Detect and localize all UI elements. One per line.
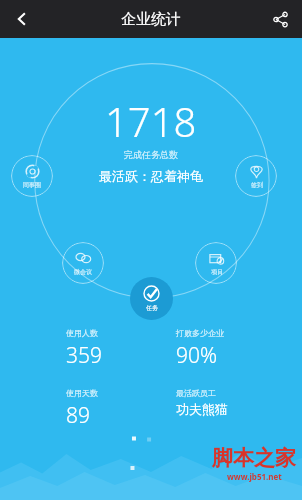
- staticText: 任务: [146, 304, 158, 312]
- button[interactable]: 签到: [235, 155, 277, 197]
- staticText: 359: [66, 341, 102, 370]
- button[interactable]: 任务: [130, 277, 173, 320]
- button[interactable]: 项目: [195, 242, 237, 284]
- staticText: 项目: [211, 268, 223, 276]
- staticText: 90%: [176, 341, 218, 370]
- staticText: 脚本之家: [212, 445, 296, 471]
- staticText: 企业统计: [121, 10, 181, 29]
- staticText: 最活跃：忍着神龟: [99, 168, 203, 184]
- staticText: 1718: [105, 94, 197, 148]
- button[interactable]: 最活跃员工: [176, 388, 286, 417]
- staticText: 功夫熊猫: [176, 401, 228, 417]
- staticText: 同事圈: [23, 181, 41, 189]
- button[interactable]: 使用天数: [66, 388, 176, 430]
- staticText: 签到: [251, 181, 263, 189]
- staticText: 使用人数: [66, 328, 98, 338]
- button[interactable]: Back: [0, 0, 44, 38]
- staticText: 打败多少企业: [176, 328, 224, 338]
- button[interactable]: 同事圈: [11, 155, 53, 197]
- button[interactable]: 打败多少企业: [176, 328, 286, 370]
- staticText: 89: [66, 401, 90, 430]
- staticText: 完成任务总数: [124, 149, 178, 160]
- button[interactable]: 微会议: [62, 242, 104, 284]
- button[interactable]: Share: [258, 0, 302, 38]
- staticText: 最活跃员工: [176, 388, 216, 398]
- staticText: 使用天数: [66, 388, 98, 398]
- staticText: www.jb51.net: [227, 471, 282, 482]
- staticText: 微会议: [74, 268, 92, 276]
- button[interactable]: 使用人数: [66, 328, 176, 370]
